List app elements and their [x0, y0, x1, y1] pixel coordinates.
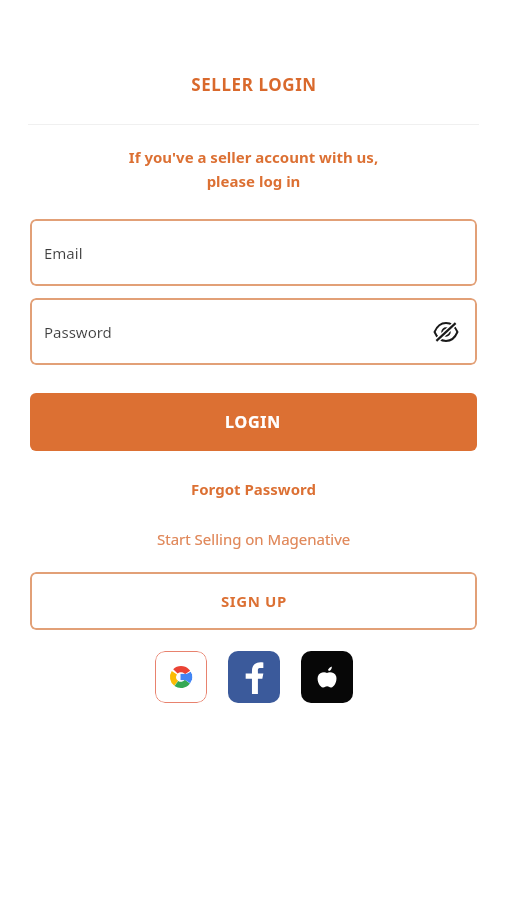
staticText: SELLER LOGIN	[191, 73, 317, 96]
button[interactable]: LOGIN	[30, 393, 477, 451]
button[interactable]: Email	[30, 219, 477, 286]
button[interactable]: Sign in with Google	[155, 651, 207, 703]
staticText: Forgot Password	[191, 479, 316, 499]
button[interactable]: SIGN UP	[30, 572, 477, 630]
staticText: SIGN UP	[221, 591, 287, 611]
button[interactable]: Forgot Password	[181, 475, 326, 503]
staticText: Start Selling on Magenative	[157, 529, 351, 549]
staticText: If you've a seller account with us, plea…	[0, 147, 507, 191]
button[interactable]: Show password	[431, 317, 461, 347]
staticText: Password	[44, 322, 112, 342]
button[interactable]: Sign in with Facebook	[228, 651, 280, 703]
staticText: Email	[44, 243, 83, 263]
button[interactable]: Sign in with Apple	[301, 651, 353, 703]
button[interactable]: Password	[30, 298, 477, 365]
button[interactable]: Start Selling on Magenative	[147, 525, 361, 553]
staticText: LOGIN	[225, 411, 282, 433]
